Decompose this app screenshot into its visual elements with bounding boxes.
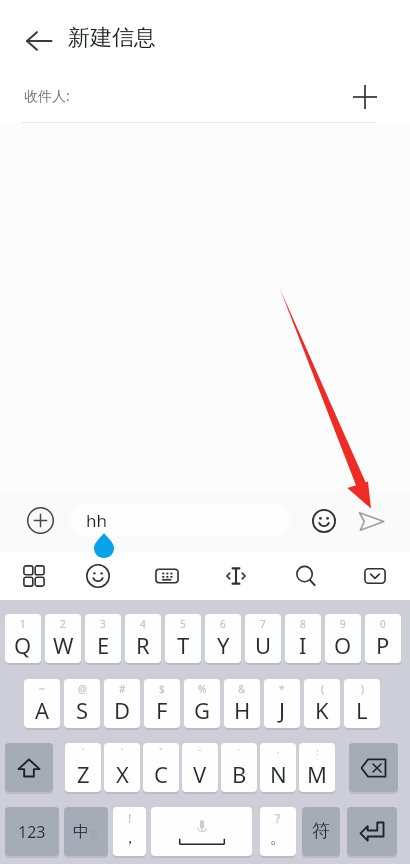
staticText: 8 bbox=[300, 617, 306, 631]
staticText: ? bbox=[275, 810, 281, 826]
button[interactable]: D bbox=[104, 679, 140, 728]
staticText: 新建信息 bbox=[68, 24, 156, 52]
staticText: A bbox=[35, 695, 50, 725]
button[interactable]: 。 bbox=[260, 807, 296, 856]
staticText: ˙ bbox=[238, 746, 240, 758]
button[interactable]: E bbox=[85, 614, 121, 663]
staticText: 中 bbox=[73, 822, 89, 842]
button[interactable]: Search bbox=[282, 553, 330, 599]
button[interactable]: G bbox=[184, 679, 220, 728]
staticText: 。 bbox=[270, 828, 286, 848]
button[interactable]: Hide keyboard bbox=[351, 553, 399, 599]
staticText: T bbox=[177, 630, 190, 660]
staticText: & bbox=[238, 682, 246, 696]
staticText: B bbox=[232, 759, 247, 789]
staticText: 收件人: bbox=[24, 86, 70, 105]
staticText: hh bbox=[86, 509, 108, 532]
staticText: H bbox=[234, 695, 251, 725]
staticText: ~ bbox=[39, 682, 45, 696]
button[interactable]: Backspace bbox=[349, 743, 398, 792]
staticText: R bbox=[136, 630, 150, 660]
button[interactable]: O bbox=[325, 614, 361, 663]
button[interactable]: Z bbox=[65, 743, 101, 792]
button[interactable]: V bbox=[182, 743, 218, 792]
button[interactable]: Space bbox=[151, 807, 252, 856]
staticText: W bbox=[53, 630, 74, 660]
staticText: 5 bbox=[180, 617, 186, 631]
button[interactable]: K bbox=[304, 679, 340, 728]
staticText: G bbox=[194, 695, 211, 725]
button[interactable]: P bbox=[365, 614, 401, 663]
button[interactable]: U bbox=[245, 614, 281, 663]
button[interactable]: Add recipient bbox=[345, 77, 384, 116]
staticText: ˋ bbox=[82, 746, 85, 758]
button[interactable]: Chinese / English bbox=[64, 807, 108, 856]
button[interactable]: A bbox=[24, 679, 60, 728]
staticText: O bbox=[334, 630, 352, 660]
staticText: F bbox=[156, 695, 168, 725]
staticText: ˊ bbox=[121, 746, 124, 758]
button[interactable]: M bbox=[299, 743, 335, 792]
staticText: 2 bbox=[60, 617, 66, 631]
button[interactable]: 123 bbox=[5, 807, 59, 856]
button[interactable]: ， bbox=[113, 807, 146, 856]
staticText: ! bbox=[128, 810, 132, 826]
staticText: ˇ bbox=[159, 746, 163, 758]
staticText: · bbox=[277, 746, 280, 758]
button[interactable]: Keyboard layout bbox=[143, 553, 191, 599]
staticText: K bbox=[315, 695, 329, 725]
staticText: E bbox=[97, 630, 110, 660]
staticText: 123 bbox=[18, 821, 46, 843]
staticText: % bbox=[198, 682, 207, 696]
button[interactable]: T bbox=[165, 614, 201, 663]
staticText: Y bbox=[217, 630, 230, 660]
button[interactable]: S bbox=[64, 679, 100, 728]
button[interactable]: N bbox=[260, 743, 296, 792]
button[interactable]: L bbox=[344, 679, 380, 728]
staticText: C bbox=[154, 759, 168, 789]
button[interactable]: Y bbox=[205, 614, 241, 663]
staticText: U bbox=[255, 630, 272, 660]
button[interactable]: H bbox=[224, 679, 260, 728]
staticText: 1 bbox=[20, 617, 26, 631]
staticText: ˉ bbox=[198, 746, 202, 758]
button[interactable]: Enter bbox=[347, 807, 397, 856]
staticText: S bbox=[76, 695, 89, 725]
staticText: Q bbox=[14, 630, 32, 660]
staticText: * bbox=[279, 682, 285, 696]
button[interactable]: Add attachment bbox=[21, 501, 59, 539]
button[interactable]: 符 bbox=[302, 807, 340, 856]
button[interactable]: I bbox=[285, 614, 321, 663]
button[interactable]: R bbox=[125, 614, 161, 663]
staticText: 0 bbox=[380, 617, 386, 631]
button[interactable]: Send bbox=[351, 501, 391, 541]
button[interactable]: Move cursor bbox=[212, 553, 260, 599]
staticText: ( bbox=[321, 682, 324, 696]
button[interactable]: B bbox=[221, 743, 257, 792]
button[interactable]: Q bbox=[5, 614, 41, 663]
staticText: J bbox=[279, 695, 286, 725]
button[interactable]: C bbox=[143, 743, 179, 792]
staticText: ， bbox=[122, 828, 138, 848]
button[interactable]: Shift bbox=[5, 743, 53, 792]
button[interactable]: W bbox=[45, 614, 81, 663]
staticText: I bbox=[299, 630, 307, 660]
button[interactable]: J bbox=[264, 679, 300, 728]
staticText: Z bbox=[77, 759, 90, 789]
staticText: ： bbox=[313, 746, 322, 757]
button[interactable]: Emoji bbox=[305, 502, 343, 540]
staticText: $ bbox=[159, 682, 165, 696]
staticText: ) bbox=[361, 682, 364, 696]
button[interactable]: Back bbox=[17, 19, 61, 63]
button[interactable]: Apps bbox=[10, 553, 58, 599]
button[interactable]: X bbox=[104, 743, 140, 792]
staticText: N bbox=[270, 759, 287, 789]
staticText: D bbox=[114, 695, 131, 725]
staticText: @ bbox=[78, 682, 87, 696]
button[interactable]: hh bbox=[70, 504, 290, 536]
staticText: 7 bbox=[260, 617, 266, 631]
staticText: P bbox=[376, 630, 390, 660]
button[interactable]: F bbox=[144, 679, 180, 728]
staticText: 4 bbox=[140, 617, 146, 631]
button[interactable]: Stickers bbox=[74, 553, 122, 599]
